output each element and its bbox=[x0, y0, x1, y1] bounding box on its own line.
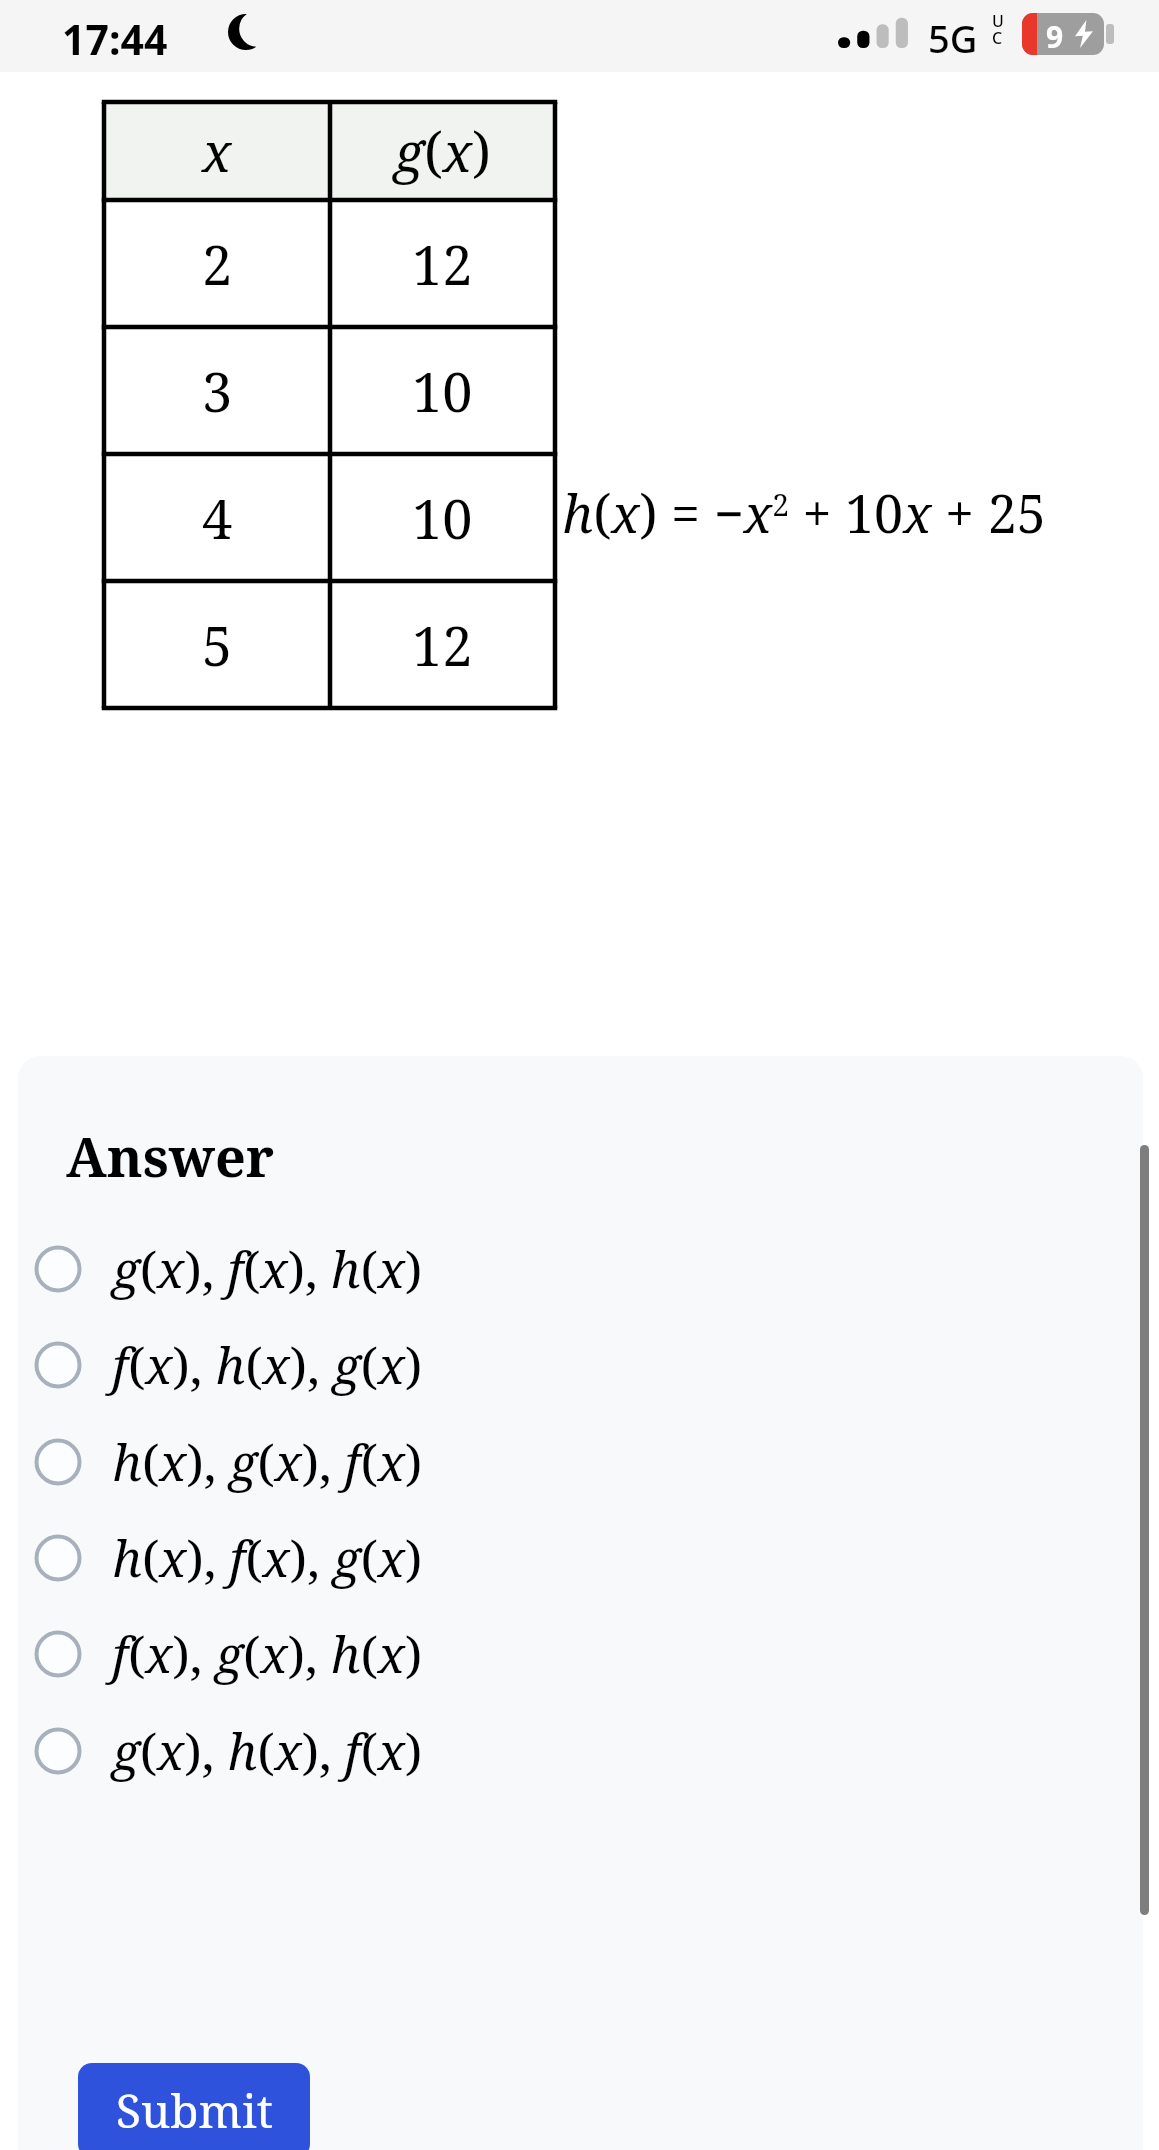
button[interactable]: g(x), f(x), h(x) bbox=[34, 1227, 654, 1311]
staticText: Answer bbox=[66, 1119, 275, 1193]
staticText: g(x), f(x), h(x) bbox=[112, 1235, 423, 1303]
staticText: 5G bbox=[928, 12, 978, 64]
staticText: 17:44 bbox=[62, 11, 168, 67]
button[interactable]: f(x), h(x), g(x) bbox=[34, 1323, 654, 1407]
staticText: g(x), h(x), f(x) bbox=[112, 1717, 423, 1785]
staticText: Submit bbox=[116, 2079, 273, 2142]
staticText: x bbox=[202, 114, 232, 188]
staticText: 10 bbox=[412, 481, 473, 555]
staticText: 4 bbox=[202, 481, 233, 555]
staticText: f(x), h(x), g(x) bbox=[112, 1331, 423, 1399]
button[interactable]: g(x), h(x), f(x) bbox=[34, 1709, 654, 1793]
button[interactable]: Submit bbox=[78, 2063, 310, 2150]
staticText: 10 bbox=[412, 354, 473, 428]
staticText: 3 bbox=[202, 354, 233, 428]
button[interactable]: h(x), g(x), f(x) bbox=[34, 1420, 654, 1504]
staticText: 12 bbox=[412, 608, 473, 682]
staticText: 5 bbox=[202, 608, 233, 682]
staticText: h(x), f(x), g(x) bbox=[112, 1524, 423, 1592]
staticText: f(x), g(x), h(x) bbox=[112, 1620, 423, 1688]
staticText: h(x) = −x2 + 10x + 25 bbox=[562, 477, 1046, 548]
button[interactable]: h(x), f(x), g(x) bbox=[34, 1516, 654, 1600]
staticText: g(x) bbox=[394, 114, 491, 188]
staticText: 12 bbox=[412, 227, 473, 301]
staticText: 9 bbox=[1046, 16, 1064, 55]
staticText: U C bbox=[992, 10, 1004, 49]
staticText: 2 bbox=[202, 227, 233, 301]
staticText: h(x), g(x), f(x) bbox=[112, 1428, 423, 1496]
button[interactable]: f(x), g(x), h(x) bbox=[34, 1612, 654, 1696]
